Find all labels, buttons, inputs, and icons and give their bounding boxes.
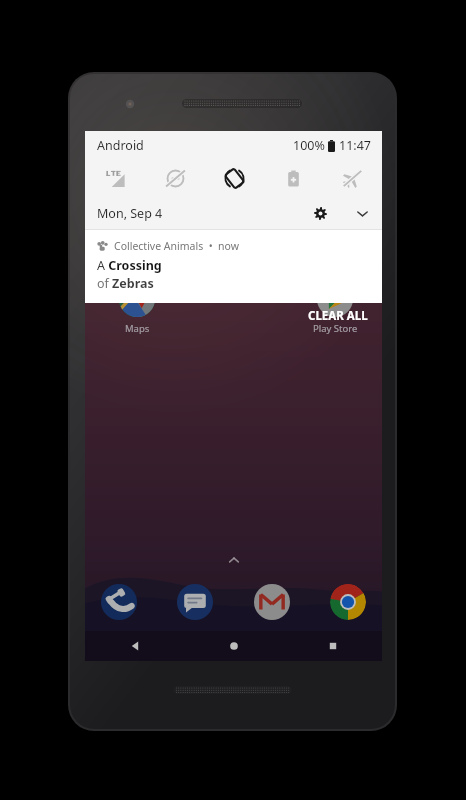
- button[interactable]: Gmail: [254, 584, 290, 620]
- staticText: 100%: [293, 137, 325, 154]
- button[interactable]: Expand quick settings: [346, 197, 378, 229]
- button[interactable]: Messages: [177, 584, 213, 620]
- staticText: 11:47: [339, 137, 371, 154]
- button[interactable]: CLEAR ALL: [304, 305, 372, 327]
- staticText: Android: [97, 137, 144, 154]
- staticText: G: [123, 284, 132, 300]
- button[interactable]: Airplane mode: [323, 160, 382, 197]
- button[interactable]: Battery saver: [264, 160, 323, 197]
- button[interactable]: Recent apps: [283, 631, 382, 661]
- button[interactable]: Mobile data LTE: [85, 160, 145, 197]
- button[interactable]: Phone: [101, 584, 137, 620]
- button[interactable]: G: [107, 281, 167, 335]
- button[interactable]: Collective Animals • now: [85, 230, 382, 303]
- staticText: Maps: [125, 322, 150, 335]
- button[interactable]: Do not disturb: [145, 160, 205, 197]
- staticText: Play Store: [313, 322, 358, 335]
- button[interactable]: Play Store: [302, 281, 368, 335]
- button[interactable]: Back: [85, 631, 184, 661]
- staticText: of Zebras: [97, 275, 154, 292]
- staticText: CLEAR ALL: [308, 308, 368, 324]
- staticText: Mon, Sep 4: [97, 205, 163, 222]
- button[interactable]: Home: [184, 631, 283, 661]
- staticText: Collective Animals • now: [114, 239, 239, 253]
- button[interactable]: Auto rotate: [205, 160, 264, 197]
- button[interactable]: All apps: [221, 547, 247, 573]
- button[interactable]: Settings: [304, 197, 336, 229]
- button[interactable]: Chrome: [330, 584, 366, 620]
- staticText: A Crossing: [97, 257, 162, 274]
